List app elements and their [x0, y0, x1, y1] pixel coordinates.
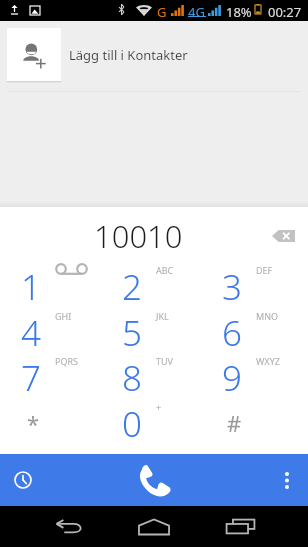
staticText: PQRS: [55, 355, 79, 367]
staticText: ABC: [156, 264, 174, 276]
button[interactable]: Home: [126, 506, 182, 547]
button[interactable]: 0: [101, 389, 202, 435]
button[interactable]: 3: [201, 252, 308, 298]
staticText: 6: [222, 309, 242, 355]
button[interactable]: 8: [101, 343, 202, 389]
staticText: GHI: [55, 310, 72, 322]
staticText: JKL: [156, 310, 169, 322]
button[interactable]: Call log: [6, 463, 40, 497]
button[interactable]: Back: [41, 506, 97, 547]
button[interactable]: 6: [201, 298, 308, 344]
staticText: TUV: [156, 355, 173, 367]
button[interactable]: 1: [0, 252, 101, 298]
staticText: 1: [21, 263, 41, 309]
button[interactable]: Lägg till i Kontakter: [0, 28, 308, 81]
button[interactable]: 4: [0, 298, 101, 344]
button[interactable]: 9: [201, 343, 308, 389]
staticText: #: [227, 408, 242, 438]
staticText: 00:27: [268, 3, 302, 21]
staticText: MNO: [256, 310, 279, 322]
staticText: *: [27, 408, 40, 438]
staticText: Lägg till i Kontakter: [69, 46, 188, 64]
button[interactable]: #: [201, 389, 308, 435]
staticText: DEF: [256, 264, 273, 276]
staticText: 18%: [226, 3, 252, 21]
staticText: 4G: [188, 3, 205, 21]
staticText: G: [157, 3, 167, 21]
button[interactable]: More options: [270, 463, 304, 497]
staticText: 0: [122, 400, 142, 446]
staticText: 3: [222, 263, 242, 309]
staticText: WXYZ: [256, 355, 280, 367]
button[interactable]: Recent apps: [212, 506, 268, 547]
staticText: 7: [21, 354, 41, 400]
button[interactable]: 5: [101, 298, 202, 344]
staticText: 9: [222, 354, 242, 400]
staticText: 4: [21, 309, 41, 355]
button[interactable]: Backspace: [265, 216, 301, 256]
button[interactable]: *: [0, 389, 101, 435]
staticText: 5: [122, 309, 142, 355]
button[interactable]: Call: [126, 454, 182, 506]
button[interactable]: 2: [101, 252, 202, 298]
button[interactable]: 7: [0, 343, 101, 389]
staticText: 2: [122, 263, 142, 309]
staticText: 8: [122, 354, 142, 400]
staticText: +: [156, 401, 162, 413]
staticText: 10010: [94, 215, 183, 257]
